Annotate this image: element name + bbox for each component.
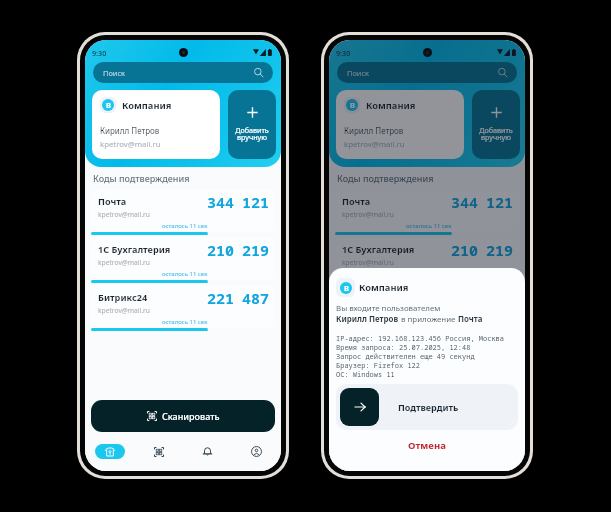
- button[interactable]: Подтвердить: [336, 384, 518, 430]
- button[interactable]: Сканировать: [335, 400, 519, 432]
- staticText: Компания: [359, 281, 409, 294]
- staticText: kpetrov@mail.ru: [344, 139, 405, 150]
- button[interactable]: Scan: [378, 432, 427, 471]
- button[interactable]: Сканировать: [91, 400, 275, 432]
- staticText: осталось 11 сек: [406, 318, 452, 326]
- button[interactable]: Битрикс24: [91, 286, 275, 328]
- staticText: Компания: [122, 99, 172, 112]
- staticText: kpetrov@mail.ru: [342, 210, 394, 219]
- staticText: Отмена: [408, 439, 446, 452]
- staticText: kpetrov@mail.ru: [98, 210, 150, 219]
- staticText: 9:30: [336, 48, 351, 58]
- button[interactable]: 1С Бухгалтерия: [335, 238, 519, 280]
- staticText: осталось 11 сек: [162, 318, 208, 326]
- staticText: kpetrov@mail.ru: [342, 258, 394, 267]
- staticText: Коды подтверждения: [93, 172, 190, 184]
- staticText: Почта: [342, 195, 371, 207]
- staticText: 219: [242, 240, 270, 260]
- staticText: Битрикс24: [98, 291, 148, 303]
- staticText: 210: [451, 240, 479, 260]
- staticText: 121: [486, 192, 514, 212]
- button[interactable]: Почта: [335, 190, 519, 232]
- staticText: Вы входите пользователем: [336, 303, 441, 314]
- button[interactable]: Поиск: [337, 62, 517, 83]
- staticText: Поиск: [103, 68, 125, 78]
- button[interactable]: Почта: [91, 190, 275, 232]
- staticText: B: [344, 283, 349, 293]
- staticText: осталось 11 сек: [162, 270, 208, 278]
- staticText: kpetrov@mail.ru: [98, 306, 150, 315]
- staticText: kpetrov@mail.ru: [98, 258, 150, 267]
- button[interactable]: Notifications: [427, 432, 476, 471]
- staticText: B: [106, 100, 111, 110]
- button[interactable]: Отмена: [336, 434, 518, 456]
- staticText: Компания: [366, 99, 416, 112]
- staticText: в приложение: [399, 314, 458, 325]
- staticText: Битрикс24: [342, 291, 392, 303]
- staticText: Коды подтверждения: [337, 172, 434, 184]
- staticText: 344: [207, 192, 235, 212]
- button[interactable]: Notifications: [183, 432, 232, 471]
- button[interactable]: Добавить вручную: [228, 90, 276, 159]
- staticText: Поиск: [347, 68, 369, 78]
- staticText: B: [350, 100, 355, 110]
- staticText: Подтвердить: [398, 401, 459, 413]
- button[interactable]: Добавить вручную: [472, 90, 520, 159]
- button[interactable]: Scan: [134, 432, 183, 471]
- staticText: 121: [242, 192, 270, 212]
- staticText: 1С Бухгалтерия: [342, 243, 415, 255]
- staticText: Почта: [458, 314, 483, 325]
- staticText: Кирилл Петров: [336, 314, 399, 325]
- button[interactable]: B: [92, 90, 220, 159]
- staticText: осталось 11 сек: [162, 222, 208, 230]
- button[interactable]: Битрикс24: [335, 286, 519, 328]
- button[interactable]: Home: [95, 444, 125, 459]
- button[interactable]: B: [336, 90, 464, 159]
- staticText: 487: [242, 288, 270, 308]
- staticText: Сканировать: [406, 410, 464, 422]
- button[interactable]: Поиск: [93, 62, 273, 83]
- button[interactable]: Profile: [232, 432, 281, 471]
- staticText: 210: [207, 240, 235, 260]
- staticText: Сканировать: [162, 410, 220, 422]
- button[interactable]: 1С Бухгалтерия: [91, 238, 275, 280]
- staticText: Кирилл Петров: [100, 125, 160, 136]
- staticText: Добавить вручную: [235, 125, 269, 143]
- staticText: осталось 11 сек: [406, 222, 452, 230]
- staticText: 221: [207, 288, 235, 308]
- button[interactable]: Profile: [476, 432, 525, 471]
- staticText: 344: [451, 192, 479, 212]
- staticText: 1С Бухгалтерия: [98, 243, 171, 255]
- staticText: Добавить вручную: [479, 125, 513, 143]
- staticText: kpetrov@mail.ru: [342, 306, 394, 315]
- staticText: 9:30: [92, 48, 107, 58]
- staticText: kpetrov@mail.ru: [100, 139, 161, 150]
- staticText: 219: [486, 240, 514, 260]
- staticText: Кирилл Петров: [344, 125, 404, 136]
- staticText: IP-адрес: 192.168.123.456 Россия, Москва…: [336, 334, 504, 379]
- staticText: Почта: [98, 195, 127, 207]
